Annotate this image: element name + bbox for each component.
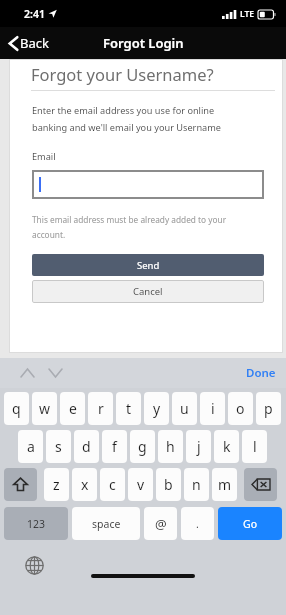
button[interactable]: Cancel xyxy=(32,280,264,303)
button[interactable]: @ xyxy=(144,507,177,540)
button[interactable]: b xyxy=(156,468,181,501)
staticText: Email xyxy=(32,150,56,163)
button[interactable]: Send xyxy=(32,254,264,276)
staticText: @ xyxy=(155,515,167,533)
button[interactable]: l xyxy=(242,430,267,463)
button[interactable]: 123 xyxy=(4,507,68,540)
staticText: p xyxy=(264,399,273,418)
staticText: a xyxy=(27,437,35,456)
staticText: h xyxy=(166,437,175,456)
button[interactable]: Go xyxy=(218,507,282,540)
button[interactable]: a xyxy=(18,430,43,463)
staticText: y xyxy=(153,399,161,418)
staticText: k xyxy=(223,437,231,456)
button[interactable]: e xyxy=(60,392,85,425)
button[interactable]: w xyxy=(32,392,57,425)
staticText: m xyxy=(218,475,232,494)
button[interactable]: n xyxy=(184,468,209,501)
staticText: i xyxy=(211,399,215,418)
staticText: b xyxy=(164,475,173,494)
staticText: Back xyxy=(20,34,49,52)
staticText: Forgot your Username? xyxy=(31,63,214,85)
staticText: t xyxy=(126,399,132,418)
button[interactable]: r xyxy=(88,392,113,425)
staticText: o xyxy=(236,399,245,418)
staticText: x xyxy=(81,475,89,494)
button[interactable]: c xyxy=(100,468,125,501)
staticText: s xyxy=(55,437,62,456)
staticText: q xyxy=(12,399,21,418)
staticText: w xyxy=(39,399,51,418)
staticText: . xyxy=(196,517,199,531)
button[interactable]: space xyxy=(72,507,140,540)
staticText: Cancel xyxy=(133,285,163,298)
button[interactable] xyxy=(32,170,264,199)
staticText: z xyxy=(53,475,60,494)
button[interactable]: h xyxy=(158,430,183,463)
button[interactable]: u xyxy=(172,392,197,425)
staticText: v xyxy=(137,475,145,494)
button[interactable]: j xyxy=(186,430,211,463)
staticText: banking and we'll email you your Usernam… xyxy=(32,121,222,134)
staticText: f xyxy=(112,437,117,456)
button[interactable]: Next field xyxy=(44,362,66,384)
button[interactable]: Shift xyxy=(4,468,37,501)
staticText: n xyxy=(192,475,201,494)
button[interactable]: Previous field xyxy=(16,362,38,384)
button[interactable]: m xyxy=(212,468,237,501)
staticText: g xyxy=(138,437,147,456)
button[interactable]: z xyxy=(44,468,69,501)
staticText: r xyxy=(98,399,104,418)
staticText: u xyxy=(180,399,189,418)
button[interactable]: v xyxy=(128,468,153,501)
staticText: c xyxy=(109,475,116,494)
staticText: Go xyxy=(243,517,257,531)
staticText: e xyxy=(69,399,77,418)
button[interactable]: i xyxy=(200,392,225,425)
staticText: Forgot Login xyxy=(103,34,184,52)
button[interactable]: x xyxy=(72,468,97,501)
staticText: l xyxy=(253,437,257,456)
staticText: This email address must be already added… xyxy=(32,214,227,225)
button[interactable]: y xyxy=(144,392,169,425)
staticText: 2:41 xyxy=(24,7,45,21)
button[interactable]: Change keyboard language xyxy=(22,553,46,577)
button[interactable]: Backspace xyxy=(244,468,277,501)
button[interactable]: Done xyxy=(236,361,286,385)
button[interactable]: . xyxy=(181,507,214,540)
staticText: LTE xyxy=(240,8,255,20)
staticText: d xyxy=(82,437,91,456)
staticText: Send xyxy=(137,259,160,272)
button[interactable]: s xyxy=(46,430,71,463)
staticText: account. xyxy=(32,229,66,240)
button[interactable]: q xyxy=(4,392,29,425)
button[interactable]: Back xyxy=(0,30,57,56)
button[interactable]: k xyxy=(214,430,239,463)
staticText: Done xyxy=(246,365,276,381)
staticText: space xyxy=(92,517,121,531)
button[interactable]: t xyxy=(116,392,141,425)
staticText: j xyxy=(197,437,201,456)
staticText: 123 xyxy=(27,517,46,531)
button[interactable]: d xyxy=(74,430,99,463)
staticText: Enter the email address you use for onli… xyxy=(32,104,215,117)
button[interactable]: g xyxy=(130,430,155,463)
button[interactable]: f xyxy=(102,430,127,463)
button[interactable]: p xyxy=(256,392,281,425)
button[interactable]: o xyxy=(228,392,253,425)
